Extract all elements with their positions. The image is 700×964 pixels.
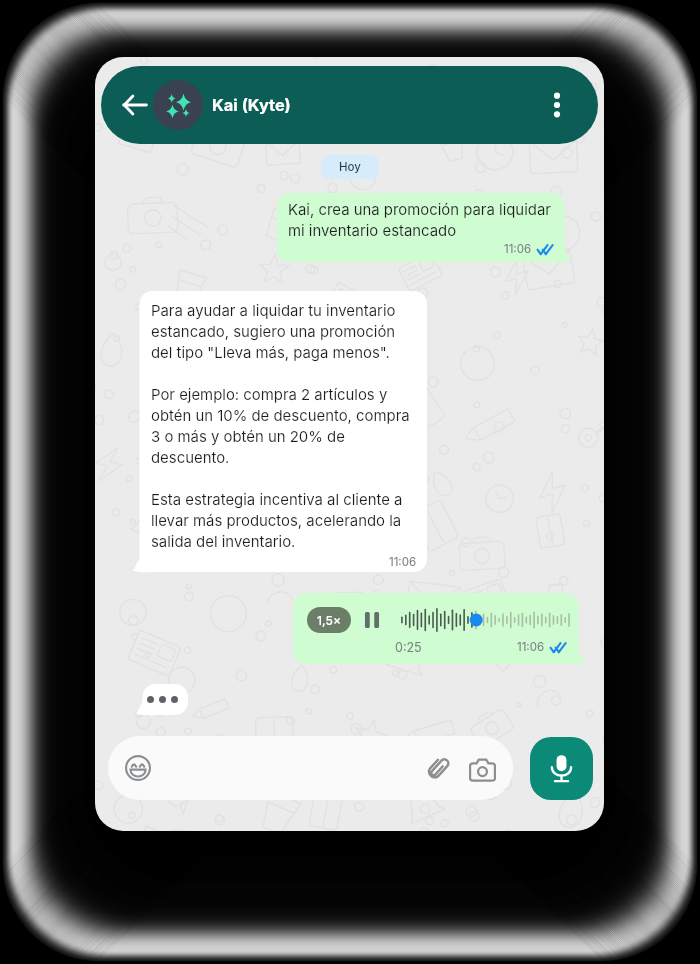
button[interactable]: Back xyxy=(101,66,598,144)
button[interactable]: Kai, crea una promoción para liquidar mi… xyxy=(277,193,571,262)
button[interactable]: Hoy xyxy=(321,155,379,179)
button[interactable]: Pause xyxy=(364,612,380,628)
button[interactable]: Back xyxy=(120,90,150,120)
button[interactable]: 1,5× xyxy=(293,593,585,664)
button[interactable]: More options xyxy=(545,90,569,120)
button[interactable] xyxy=(136,684,188,715)
button[interactable]: Para ayudar a liquidar tu inventario est… xyxy=(133,291,427,572)
staticText: 11:06 xyxy=(389,555,417,569)
staticText: 11:06 xyxy=(504,242,532,256)
button[interactable]: Record voice message xyxy=(530,737,593,800)
staticText: Kai (Kyte) xyxy=(212,95,291,115)
staticText: 11:06 xyxy=(517,640,545,654)
staticText: Hoy xyxy=(339,160,361,174)
staticText: 1,5× xyxy=(317,613,341,628)
button[interactable]: 1,5× xyxy=(307,607,351,633)
button[interactable]: Camera xyxy=(469,755,496,782)
staticText: Para ayudar a liquidar tu inventario est… xyxy=(151,302,417,551)
button[interactable]: Emoji xyxy=(108,736,513,800)
button[interactable]: Attach file xyxy=(424,754,452,782)
button[interactable]: Emoji xyxy=(125,755,151,781)
staticText: 0:25 xyxy=(395,640,422,655)
staticText: Kai, crea una promoción para liquidar mi… xyxy=(288,201,554,240)
